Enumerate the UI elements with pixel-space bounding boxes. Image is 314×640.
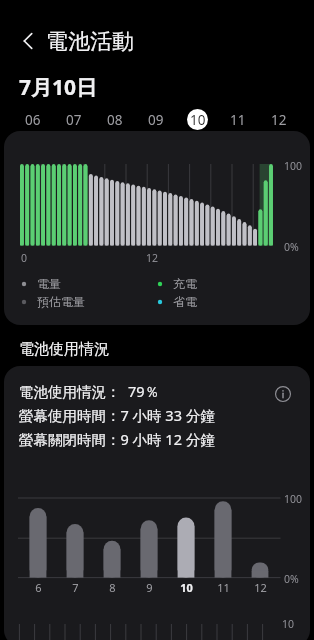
staticText: 螢幕關閉時間：9 小時 12 分鐘	[19, 429, 215, 449]
staticText: 07	[66, 111, 82, 129]
staticText: 預估電量	[37, 294, 85, 309]
staticText: 11	[230, 111, 246, 129]
button[interactable]: 10	[179, 101, 215, 138]
staticText: 0%	[284, 240, 299, 254]
staticText: 省電	[173, 294, 197, 309]
staticText: 7	[72, 580, 79, 595]
staticText: 06	[25, 111, 41, 129]
button[interactable]: 07	[56, 101, 92, 138]
staticText: 電量	[37, 276, 61, 291]
staticText: 電池使用情況： 79％	[19, 381, 160, 401]
button[interactable]: 08	[97, 101, 133, 138]
staticText: 0%	[284, 572, 299, 586]
staticText: 100	[284, 492, 303, 506]
staticText: 6	[35, 580, 42, 595]
staticText: 12	[271, 111, 287, 129]
button[interactable]: 12	[261, 101, 297, 138]
staticText: 電池活動	[46, 28, 134, 56]
button[interactable]: 預估電量	[18, 293, 130, 311]
button[interactable]: 電量	[18, 275, 130, 293]
button[interactable]: 09	[138, 101, 174, 138]
staticText: 12	[254, 580, 267, 595]
button[interactable]: 11	[220, 101, 256, 138]
staticText: 充電	[173, 276, 197, 291]
staticText: 10	[190, 111, 206, 129]
button[interactable]: Back	[10, 24, 44, 58]
staticText: 10	[282, 617, 295, 631]
staticText: 12	[146, 251, 159, 265]
staticText: 8	[109, 580, 116, 595]
staticText: 10	[180, 580, 193, 595]
button[interactable]: 06	[15, 101, 51, 138]
staticText: 螢幕使用時間：7 小時 33 分鐘	[19, 405, 215, 425]
staticText: 電池使用情況	[19, 340, 109, 359]
staticText: 9	[146, 580, 153, 595]
staticText: 11	[217, 580, 230, 595]
staticText: 08	[107, 111, 123, 129]
button[interactable]: 省電	[154, 293, 266, 311]
button[interactable]: Info	[275, 386, 291, 402]
staticText: 09	[148, 111, 164, 129]
staticText: 100	[284, 159, 303, 173]
staticText: 0	[21, 251, 28, 265]
staticText: 7月10日	[19, 73, 98, 102]
button[interactable]: 充電	[154, 275, 266, 293]
